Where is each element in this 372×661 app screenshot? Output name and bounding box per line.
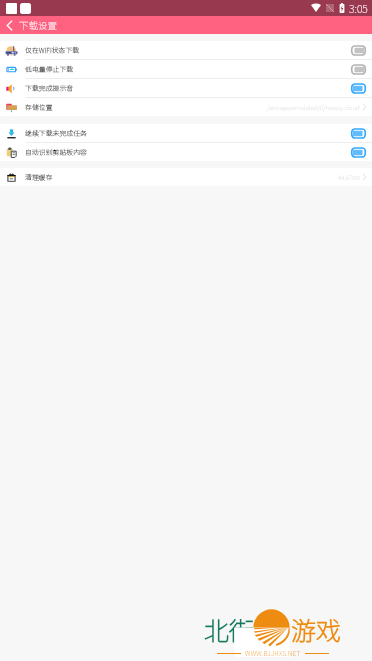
button[interactable]: 清理缓存 [0, 168, 372, 186]
button[interactable]: 继续下载未完成任务 [0, 124, 372, 142]
button[interactable]: Switch on [351, 147, 366, 158]
staticText: 低电量停止下载 [25, 64, 74, 74]
staticText: 游戏 [291, 611, 342, 647]
staticText: 下载完成提示音 [25, 83, 74, 93]
button[interactable]: Switch off [351, 64, 366, 75]
button[interactable]: 自动识别剪贴板内容 [0, 143, 372, 161]
button[interactable]: 存储位置 [0, 98, 372, 116]
staticText: 继续下载未完成任务 [25, 128, 88, 138]
staticText: 自动识别剪贴板内容 [25, 147, 88, 157]
button[interactable]: 低电量停止下载 [0, 60, 372, 78]
button[interactable]: 仅在WIFI状态下载 [0, 41, 372, 59]
staticText: 下载设置 [19, 18, 58, 32]
button[interactable]: Switch off [351, 45, 366, 56]
staticText: 存储位置 [25, 102, 53, 112]
staticText: 仅在WIFI状态下载 [25, 45, 80, 55]
staticText: 北街 [204, 611, 255, 647]
staticText: WWW.BJJHXS.NET [245, 649, 301, 658]
button[interactable]: Switch on [351, 83, 366, 94]
button[interactable]: Back [0, 16, 19, 34]
button[interactable]: Switch on [351, 128, 366, 139]
staticText: /storage/emulated/0/happy.cloud [267, 103, 360, 112]
staticText: 3:05 [349, 1, 368, 16]
staticText: 清理缓存 [25, 172, 53, 182]
button[interactable]: 下载完成提示音 [0, 79, 372, 97]
staticText: 44.67KB [338, 173, 360, 182]
